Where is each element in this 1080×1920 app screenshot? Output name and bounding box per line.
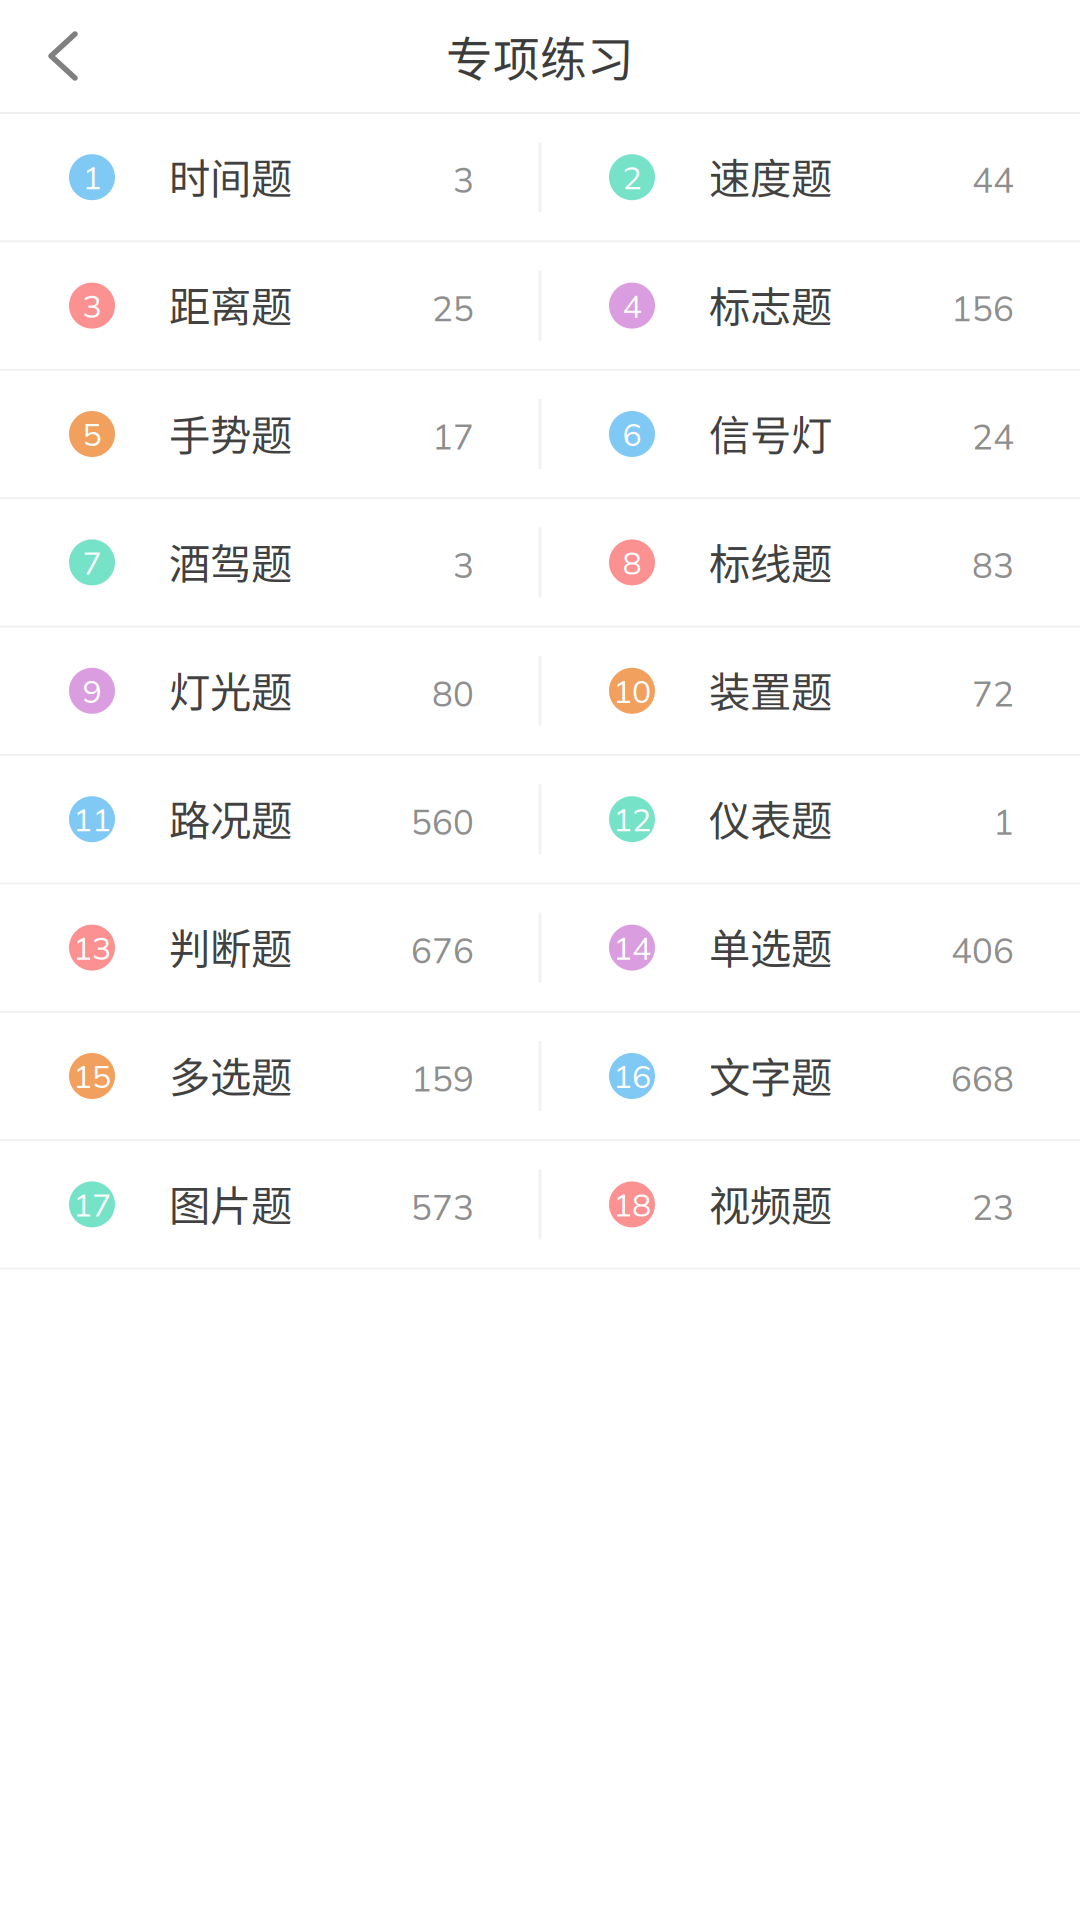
staticText: 17 [73, 1184, 111, 1224]
staticText: 多选题 [169, 1045, 292, 1104]
button[interactable]: 单选题 406 [540, 884, 1080, 1011]
staticText: 72 [972, 671, 1014, 715]
staticText: 83 [972, 543, 1014, 587]
staticText: 676 [411, 928, 474, 972]
staticText: 图片题 [169, 1173, 292, 1233]
staticText: 单选题 [709, 916, 832, 976]
button[interactable]: 文字题 668 [540, 1013, 1080, 1139]
button[interactable]: 信号灯 24 [540, 371, 1080, 497]
staticText: 1 [82, 157, 101, 197]
staticText: 24 [972, 415, 1014, 458]
button[interactable]: 判断题 676 [0, 884, 540, 1011]
staticText: 7 [82, 542, 101, 582]
staticText: 信号灯 [709, 403, 832, 462]
staticText: 15 [73, 1056, 111, 1096]
staticText: 25 [432, 286, 474, 330]
staticText: 560 [411, 800, 474, 843]
staticText: 18 [613, 1184, 651, 1224]
staticText: 668 [951, 1057, 1014, 1100]
button[interactable]: 路况题 560 [0, 756, 540, 882]
staticText: 判断题 [169, 916, 292, 976]
staticText: 573 [411, 1185, 474, 1229]
button[interactable]: 时间题 3 [0, 114, 540, 240]
staticText: 3 [453, 543, 474, 587]
button[interactable]: 视频题 23 [540, 1141, 1080, 1268]
button[interactable]: 酒驾题 3 [0, 499, 540, 626]
button[interactable]: 仪表题 1 [540, 756, 1080, 882]
staticText: 80 [432, 671, 474, 715]
button[interactable]: 手势题 17 [0, 371, 540, 497]
button[interactable]: 装置题 72 [540, 628, 1080, 754]
staticText: 13 [73, 927, 111, 968]
staticText: 标志题 [709, 274, 832, 334]
staticText: 手势题 [169, 403, 292, 462]
button[interactable]: 图片题 573 [0, 1141, 540, 1268]
staticText: 10 [613, 671, 651, 711]
button[interactable]: 多选题 159 [0, 1013, 540, 1139]
staticText: 视频题 [709, 1173, 832, 1233]
staticText: 文字题 [709, 1045, 832, 1104]
staticText: 酒驾题 [169, 531, 292, 591]
button[interactable]: Back [0, 0, 108, 112]
staticText: 专项练习 [446, 22, 634, 90]
staticText: 速度题 [709, 146, 832, 206]
staticText: 装置题 [709, 659, 832, 719]
staticText: 6 [622, 414, 641, 454]
staticText: 路况题 [169, 788, 292, 848]
staticText: 44 [972, 158, 1014, 201]
staticText: 23 [972, 1185, 1014, 1229]
staticText: 8 [622, 542, 641, 582]
staticText: 14 [613, 927, 651, 968]
staticText: 标线题 [709, 531, 832, 591]
staticText: 406 [951, 928, 1014, 972]
staticText: 3 [82, 285, 101, 326]
staticText: 灯光题 [169, 659, 292, 719]
staticText: 159 [411, 1057, 474, 1100]
staticText: 3 [453, 158, 474, 201]
button[interactable]: 灯光题 80 [0, 628, 540, 754]
staticText: 16 [613, 1056, 651, 1096]
button[interactable]: 标志题 156 [540, 242, 1080, 369]
staticText: 17 [432, 415, 474, 458]
staticText: 仪表题 [709, 788, 832, 848]
staticText: 11 [73, 799, 111, 839]
staticText: 156 [951, 286, 1014, 330]
staticText: 12 [613, 799, 651, 839]
staticText: 9 [82, 671, 101, 711]
button[interactable]: 距离题 25 [0, 242, 540, 369]
staticText: 时间题 [169, 146, 292, 206]
staticText: 2 [622, 157, 641, 197]
staticText: 5 [82, 414, 101, 454]
staticText: 4 [622, 285, 641, 326]
button[interactable]: 速度题 44 [540, 114, 1080, 240]
staticText: 距离题 [169, 274, 292, 334]
button[interactable]: 标线题 83 [540, 499, 1080, 626]
staticText: 1 [993, 800, 1014, 843]
